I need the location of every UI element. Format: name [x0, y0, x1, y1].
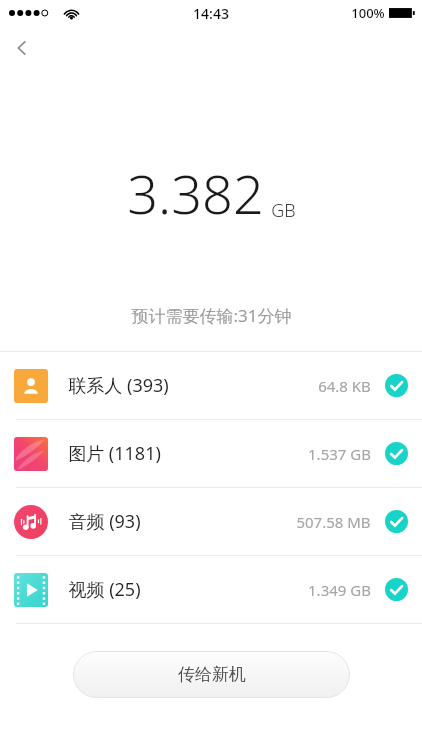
staticText: 联系人 (393) [68, 373, 169, 398]
staticText: GB [271, 198, 296, 223]
staticText: 视频 (25) [68, 577, 141, 602]
button[interactable]: Back [0, 26, 44, 70]
staticText: 3.382 [127, 156, 264, 230]
staticText: 1.349 GB [308, 580, 371, 600]
button[interactable]: 视频 (25) [0, 556, 422, 623]
staticText: 507.58 MB [296, 512, 371, 532]
staticText: 1.537 GB [308, 444, 371, 464]
staticText: 预计需要传输:31分钟 [131, 304, 292, 327]
button[interactable]: 联系人 (393) [0, 352, 422, 419]
button[interactable]: 传给新机 [73, 651, 350, 698]
button[interactable]: 音频 (93) [0, 488, 422, 555]
staticText: 14:43 [193, 4, 229, 23]
staticText: 64.8 KB [318, 376, 371, 396]
staticText: 图片 (1181) [68, 441, 161, 466]
button[interactable]: 图片 (1181) [0, 420, 422, 487]
staticText: 传给新机 [178, 664, 246, 685]
staticText: 音频 (93) [68, 509, 141, 534]
staticText: 100% [351, 4, 385, 22]
